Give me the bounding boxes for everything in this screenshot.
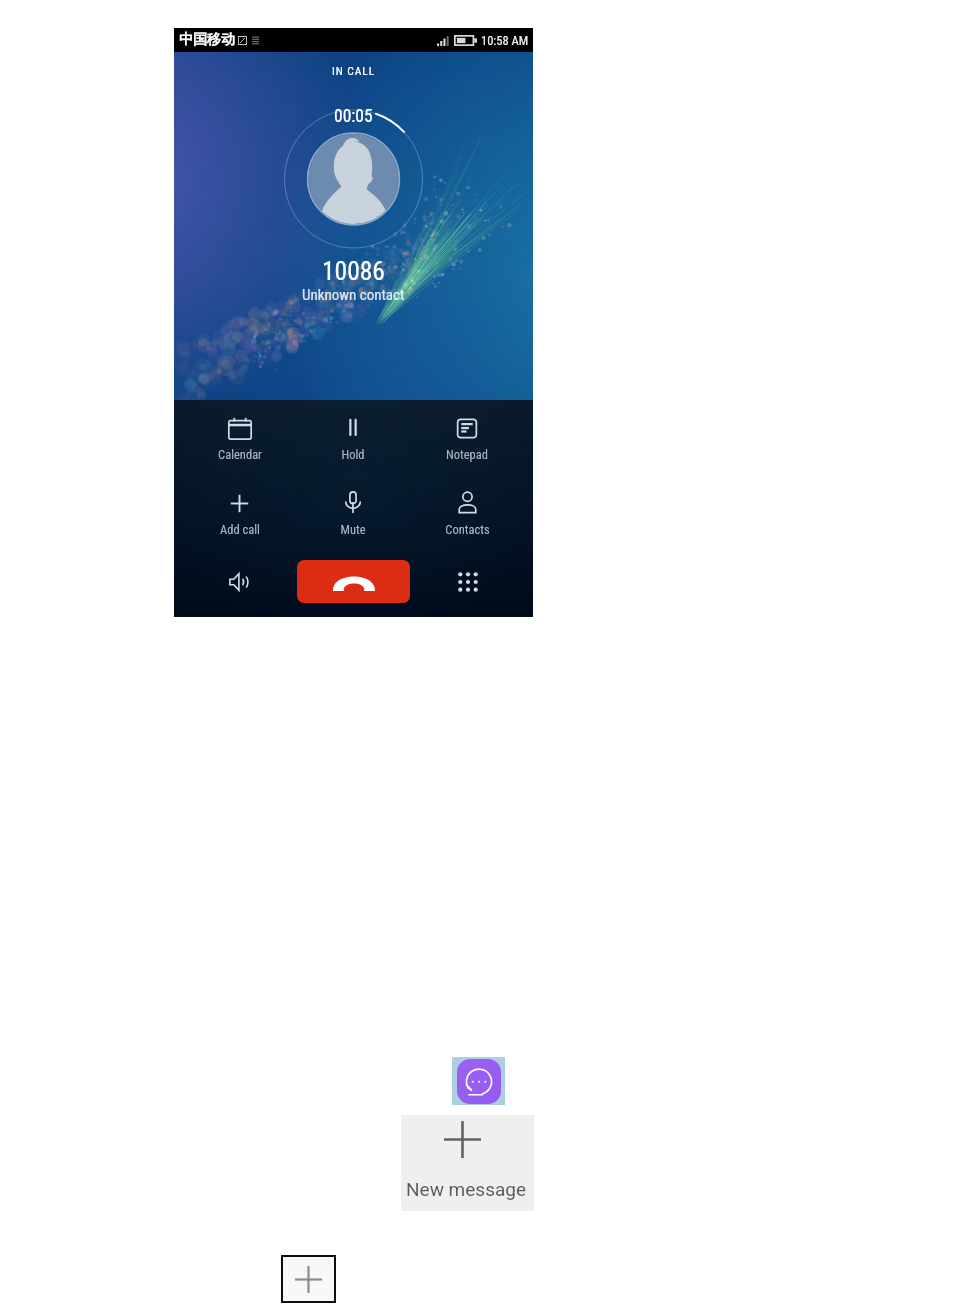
- button[interactable]: Mute: [296, 491, 410, 537]
- staticText: 10:58 AM: [481, 33, 529, 48]
- button[interactable]: Messaging app: [452, 1057, 505, 1105]
- button[interactable]: Notepad: [410, 416, 524, 462]
- button[interactable]: End call: [297, 560, 410, 603]
- button[interactable]: Add call: [183, 491, 296, 537]
- staticText: Unknown contact: [302, 286, 405, 304]
- staticText: Add call: [220, 522, 260, 537]
- staticText: 10086: [322, 256, 385, 286]
- button[interactable]: Hold: [296, 416, 410, 462]
- button[interactable]: Speaker: [214, 553, 266, 611]
- staticText: New message: [406, 1178, 527, 1200]
- button[interactable]: Calendar: [183, 416, 296, 462]
- button[interactable]: Contacts: [410, 491, 524, 537]
- staticText: Calendar: [218, 447, 262, 462]
- staticText: 中国移动: [179, 31, 235, 49]
- button[interactable]: Keypad: [442, 553, 494, 611]
- staticText: 00:05: [334, 106, 373, 127]
- button[interactable]: New message: [401, 1115, 534, 1211]
- staticText: Hold: [341, 447, 365, 462]
- staticText: Notepad: [446, 447, 488, 462]
- staticText: Contacts: [445, 522, 490, 537]
- button[interactable]: [283, 1257, 334, 1301]
- staticText: IN CALL: [332, 64, 376, 77]
- staticText: Mute: [340, 522, 366, 537]
